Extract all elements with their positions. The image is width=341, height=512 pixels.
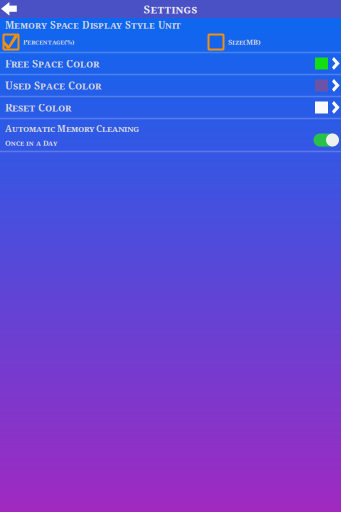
staticText: Percentage(%) — [23, 37, 74, 47]
button[interactable]: Size(MB) — [208, 32, 261, 52]
staticText: Size(MB) — [228, 37, 261, 47]
staticText: Settings — [143, 1, 197, 17]
button[interactable]: Reset Color — [0, 97, 341, 118]
button[interactable]: Free Space Color — [0, 53, 341, 74]
staticText: Reset Color — [5, 100, 71, 115]
button[interactable]: Back — [0, 2, 17, 16]
button[interactable]: Percentage(%) — [0, 32, 74, 52]
staticText: Once in a Day — [5, 138, 57, 148]
staticText: Free Space Color — [5, 56, 99, 71]
staticText: Used Space Color — [5, 78, 101, 93]
staticText: Memory Space Display Style Unit — [5, 18, 181, 32]
button[interactable]: Automatic Memory Cleaning — [0, 119, 341, 152]
button[interactable]: Used Space Color — [0, 75, 341, 96]
staticText: Automatic Memory Cleaning — [5, 122, 139, 135]
